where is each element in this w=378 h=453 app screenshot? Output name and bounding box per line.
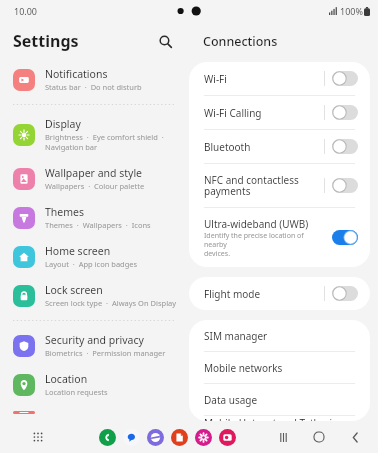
staticText: Lock screen <box>45 283 103 297</box>
button[interactable]: Themes <box>0 198 189 237</box>
button[interactable]: Off <box>332 178 358 193</box>
staticText: Screen lock type · Always On Display <box>45 298 177 308</box>
staticText: Notifications <box>45 67 108 81</box>
button[interactable]: Internet <box>147 429 164 446</box>
button[interactable]: Ultra-wideband (UWB) <box>189 208 370 267</box>
button[interactable]: Data usage <box>189 384 370 415</box>
button[interactable]: Back <box>346 428 364 446</box>
button[interactable]: Bluetooth <box>189 130 370 163</box>
button[interactable]: Home <box>310 428 328 446</box>
button[interactable]: Phone <box>99 429 116 446</box>
button[interactable]: Recents <box>274 428 292 446</box>
staticText: Home screen <box>45 244 111 258</box>
button[interactable]: Mobile Hotspot and Tethering <box>189 416 370 421</box>
button[interactable]: Display <box>0 110 189 159</box>
button[interactable]: Location <box>0 365 189 404</box>
staticText: Security and privacy <box>45 333 144 347</box>
button[interactable]: NFC and contactless payments <box>189 164 370 207</box>
staticText: Brightness · Eye comfort shield · Naviga… <box>45 132 164 152</box>
staticText: Location requests <box>45 387 108 397</box>
button[interactable]: On <box>332 230 358 245</box>
staticText: Wallpaper and style <box>45 166 143 180</box>
staticText: 10.00 <box>14 5 38 17</box>
button[interactable]: Wi-Fi Calling <box>189 96 370 129</box>
staticText: Identify the precise location of nearby … <box>204 231 324 258</box>
button[interactable]: Wallpaper and style <box>0 159 189 198</box>
button[interactable]: Wi-Fi <box>189 62 370 95</box>
button[interactable]: Off <box>332 286 358 301</box>
button[interactable]: Messages <box>123 429 140 446</box>
button[interactable]: Flight mode <box>189 277 370 310</box>
staticText: SIM manager <box>204 329 268 343</box>
staticText: Mobile networks <box>204 361 283 375</box>
staticText: Bluetooth <box>204 140 251 154</box>
staticText: Biometrics · Permission manager <box>45 348 166 358</box>
button[interactable]: Off <box>332 105 358 120</box>
staticText: Location <box>45 372 88 386</box>
staticText: Wi-Fi Calling <box>204 106 262 120</box>
button[interactable]: Safety and emergency <box>0 404 189 421</box>
staticText: NFC and contactless payments <box>204 173 299 198</box>
button[interactable]: Home screen <box>0 237 189 276</box>
button[interactable]: Lock screen <box>0 276 189 315</box>
button[interactable]: SIM manager <box>189 320 370 351</box>
button[interactable]: Gallery <box>219 429 236 446</box>
staticText: Flight mode <box>204 287 261 301</box>
staticText: Themes <box>45 205 85 219</box>
button[interactable]: Mobile networks <box>189 352 370 383</box>
button[interactable]: My Files <box>171 429 188 446</box>
staticText: Wi-Fi <box>204 72 227 86</box>
staticText: Status bar · Do not disturb <box>45 82 142 92</box>
staticText: Layout · App icon badges <box>45 259 138 269</box>
button[interactable]: Apps <box>28 427 48 447</box>
staticText: Data usage <box>204 393 258 407</box>
button[interactable]: Galaxy Store <box>195 429 212 446</box>
button[interactable]: Off <box>332 139 358 154</box>
button[interactable]: Off <box>332 71 358 86</box>
button[interactable]: Search <box>153 29 177 53</box>
staticText: Display <box>45 117 81 131</box>
staticText: Connections <box>203 33 278 50</box>
staticText: Ultra-wideband (UWB) <box>204 217 309 231</box>
staticText: Settings <box>13 30 79 52</box>
staticText: Wallpapers · Colour palette <box>45 181 145 191</box>
staticText: Themes · Wallpapers · Icons <box>45 220 151 230</box>
button[interactable]: Notifications <box>0 60 189 99</box>
button[interactable]: Security and privacy <box>0 326 189 365</box>
staticText: Mobile Hotspot and Tethering <box>204 416 345 421</box>
staticText: 100% <box>340 5 363 17</box>
